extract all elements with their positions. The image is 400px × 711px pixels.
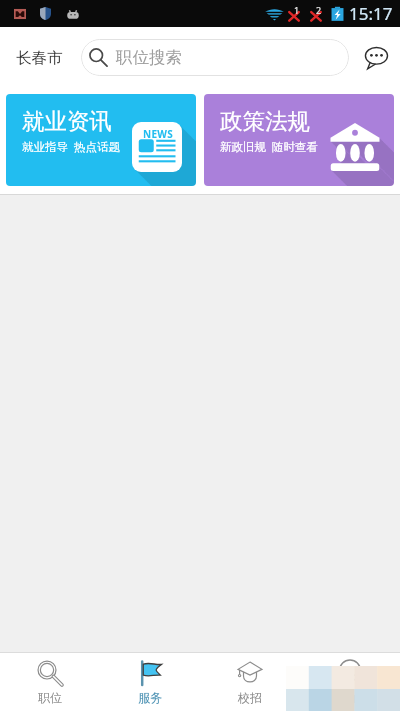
button[interactable]: 职位搜索 <box>81 39 349 76</box>
staticText: 就业指导 热点话题 <box>22 139 120 155</box>
staticText: 2 <box>316 4 322 16</box>
staticText: NEWS <box>143 127 174 141</box>
button[interactable]: Messages <box>363 45 389 71</box>
staticText: 服务 <box>138 690 162 705</box>
button[interactable]: 就业资讯 <box>6 94 196 186</box>
button[interactable]: 职位 <box>0 653 100 711</box>
staticText: 新政旧规 随时查看 <box>220 139 318 155</box>
button[interactable]: 服务 <box>100 653 200 711</box>
staticText: 政策法规 <box>220 107 310 135</box>
staticText: 职位 <box>38 690 62 705</box>
staticText: 就业资讯 <box>22 107 112 135</box>
button[interactable]: 我的 <box>300 653 400 711</box>
button[interactable]: 长春市 <box>16 42 63 74</box>
button[interactable]: 政策法规 <box>204 94 394 186</box>
staticText: 校招 <box>238 690 262 705</box>
staticText: 我的 <box>338 690 362 705</box>
button[interactable]: 校招 <box>200 653 300 711</box>
staticText: 15:17 <box>349 2 393 25</box>
staticText: 1 <box>294 4 300 16</box>
staticText: 长春市 <box>16 48 63 68</box>
staticText: 职位搜索 <box>116 47 182 68</box>
